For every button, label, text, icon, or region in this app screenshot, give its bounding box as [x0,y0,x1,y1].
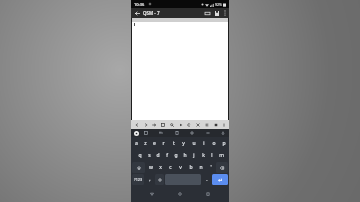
staticText: s [148,152,151,159]
button[interactable]: Play [177,120,184,129]
button[interactable]: ?123 [132,174,144,185]
button[interactable]: Reload [185,120,192,129]
button[interactable]: Google Assistant [134,131,139,136]
button[interactable]: Backspace [216,162,228,173]
button[interactable]: b [186,162,195,173]
staticText: q [138,152,142,159]
button[interactable]: Clipboard [173,129,181,137]
button[interactable]: Shift [132,162,145,173]
button[interactable]: g [172,150,180,161]
button[interactable]: Open folder [203,8,212,18]
button[interactable]: Home [173,186,187,202]
button[interactable]: i [199,138,208,149]
button[interactable]: h [181,150,189,161]
button[interactable]: d [154,150,162,161]
button[interactable]: Cut [194,120,201,129]
staticText: r [162,140,165,147]
button[interactable]: ' [206,162,215,173]
staticText: l [211,152,213,159]
button[interactable]: Emoji [155,174,164,185]
button[interactable]: j [190,150,198,161]
button[interactable]: Voice input [219,129,227,137]
staticText: b [189,164,193,171]
staticText: w [149,164,153,171]
button[interactable]: n [196,162,205,173]
staticText: 10:36 [134,2,145,7]
button[interactable]: l [208,150,216,161]
staticText: f [166,152,168,159]
button[interactable]: x [156,162,165,173]
button[interactable]: v [176,162,185,173]
button[interactable]: z [141,138,149,149]
button[interactable]: Settings [188,129,196,137]
button[interactable]: q [135,150,144,161]
button[interactable]: w [146,162,155,173]
staticText: z [144,140,147,147]
button[interactable]: Emoji [204,129,212,137]
button[interactable]: u [189,138,198,149]
button[interactable]: More [220,120,227,129]
button[interactable]: Undo [133,120,140,129]
button[interactable]: c [166,162,175,173]
button[interactable] [132,18,228,120]
staticText: d [156,152,160,159]
staticText: y [182,140,185,147]
button[interactable]: Stickers [142,129,150,137]
staticText: v [179,164,182,171]
button[interactable]: Save [159,120,166,129]
button[interactable]: More options [221,8,229,18]
button[interactable]: f [163,150,171,161]
staticText: k [202,152,205,159]
button[interactable]: a [132,138,140,149]
button[interactable]: List [212,120,219,129]
button[interactable]: GIF [157,129,165,137]
staticText: 92% [215,2,222,7]
button[interactable]: y [179,138,188,149]
staticText: h [183,152,187,159]
staticText: j [193,152,195,159]
staticText: u [192,140,196,147]
button[interactable]: e [150,138,158,149]
staticText: g [174,152,178,159]
button[interactable]: Search [168,120,175,129]
staticText: a [135,140,138,147]
staticText: i [203,140,205,147]
button[interactable]: Align [203,120,210,129]
button[interactable]: p [219,138,228,149]
button[interactable]: o [209,138,218,149]
button[interactable]: k [199,150,207,161]
button[interactable]: Back [133,9,141,17]
staticText: ?123 [134,177,143,182]
button[interactable]: , [145,174,154,185]
staticText: e [153,140,156,147]
button[interactable]: s [145,150,153,161]
staticText: m [219,152,224,159]
button[interactable]: m [217,150,225,161]
staticText: QSM - 7 [143,10,203,16]
staticText: c [169,164,172,171]
button[interactable]: Recent apps [201,186,215,202]
button[interactable]: . [202,174,211,185]
button[interactable]: r [159,138,168,149]
staticText: . [206,176,208,183]
button[interactable]: Redo [142,120,149,129]
staticText: x [159,164,162,171]
staticText: t [173,140,175,147]
button[interactable]: Indent [150,120,157,129]
button[interactable]: t [169,138,178,149]
staticText: n [199,164,203,171]
staticText: o [212,140,216,147]
staticText: ' [210,164,212,171]
button[interactable]: Back [145,186,159,202]
staticText: , [149,176,151,183]
button[interactable]: Save document [212,8,221,18]
button[interactable]: Enter [212,174,228,185]
staticText: p [222,140,226,147]
